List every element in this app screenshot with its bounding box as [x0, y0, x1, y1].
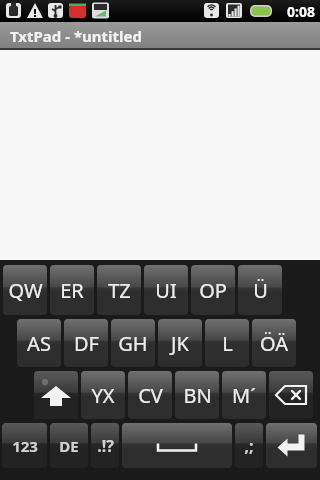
button[interactable]: GH — [111, 319, 155, 367]
staticText: 0:08 — [287, 2, 315, 21]
button[interactable]: TZ — [97, 265, 141, 315]
button[interactable]: UI — [144, 265, 188, 315]
staticText: OP — [199, 277, 227, 304]
button[interactable]: BN — [175, 371, 219, 419]
staticText: TxtPad - *untitled — [10, 26, 142, 46]
button[interactable]: ÖÄ — [252, 319, 296, 367]
button[interactable]: Enter — [266, 423, 317, 468]
button[interactable]: Space — [122, 423, 232, 468]
staticText: ÖÄ — [260, 330, 288, 357]
button[interactable]: ,; — [235, 423, 263, 468]
button[interactable]: ER — [50, 265, 94, 315]
staticText: Ü — [253, 277, 268, 304]
staticText: DE — [59, 436, 79, 456]
button[interactable]: QW — [3, 265, 47, 315]
staticText: M´ — [232, 382, 256, 409]
staticText: YX — [91, 382, 115, 409]
staticText: 123 — [12, 436, 38, 456]
button[interactable]: 123 — [2, 423, 47, 468]
staticText: QW — [8, 277, 43, 304]
button[interactable]: JK — [158, 319, 202, 367]
button[interactable]: L — [205, 319, 249, 367]
button[interactable]: DE — [50, 423, 88, 468]
button[interactable]: M´ — [222, 371, 266, 419]
button[interactable]: Backspace — [269, 371, 313, 419]
staticText: ,; — [244, 435, 254, 457]
button[interactable]: AS — [17, 319, 61, 367]
staticText: .!? — [97, 435, 114, 457]
button[interactable]: DF — [64, 319, 108, 367]
button[interactable]: Shift — [34, 371, 78, 419]
button[interactable]: .!? — [91, 423, 119, 468]
button[interactable]: YX — [81, 371, 125, 419]
staticText: GH — [118, 330, 148, 357]
staticText: CV — [138, 382, 163, 409]
staticText: ER — [60, 277, 84, 304]
staticText: UI — [155, 277, 177, 304]
staticText: AS — [27, 330, 51, 357]
staticText: JK — [171, 330, 189, 357]
button[interactable]: OP — [191, 265, 235, 315]
staticText: BN — [183, 382, 212, 409]
button[interactable]: Ü — [238, 265, 282, 315]
staticText: DF — [74, 330, 99, 357]
button[interactable]: CV — [128, 371, 172, 419]
staticText: TZ — [108, 277, 131, 304]
staticText: L — [222, 330, 233, 357]
